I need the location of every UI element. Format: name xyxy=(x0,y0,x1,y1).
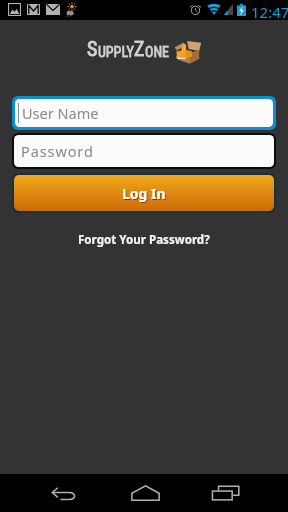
staticText: ONE xyxy=(145,44,170,60)
staticText: 12:47 xyxy=(251,2,288,22)
staticText: UPPLY xyxy=(98,44,134,60)
button[interactable]: Home xyxy=(105,474,185,512)
button[interactable]: Back xyxy=(24,474,104,512)
staticText: Password xyxy=(21,141,94,161)
staticText: S xyxy=(87,37,98,60)
staticText: User Name xyxy=(22,103,99,123)
staticText: Log In xyxy=(122,184,166,203)
staticText: Z xyxy=(134,37,145,60)
button[interactable]: Log In xyxy=(14,175,274,211)
staticText: Forgot Your Password? xyxy=(78,232,210,248)
button[interactable]: Password xyxy=(14,135,274,167)
button[interactable]: Forgot Your Password? xyxy=(72,230,216,250)
staticText: Log In xyxy=(123,185,167,204)
button[interactable]: User Name xyxy=(15,99,273,127)
button[interactable]: Recent apps xyxy=(185,474,265,512)
